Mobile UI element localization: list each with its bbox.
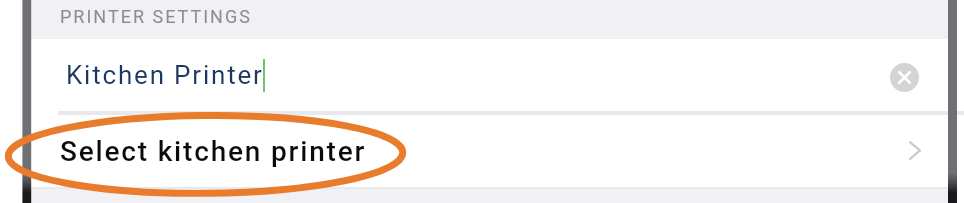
button[interactable]: Select kitchen printer <box>31 114 948 188</box>
button[interactable]: Clear text <box>890 63 919 92</box>
staticText: Select kitchen printer <box>60 135 367 168</box>
button[interactable]: Kitchen Printer <box>31 39 948 112</box>
staticText: PRINTER SETTINGS <box>60 6 252 27</box>
staticText: Kitchen Printer <box>66 60 264 90</box>
